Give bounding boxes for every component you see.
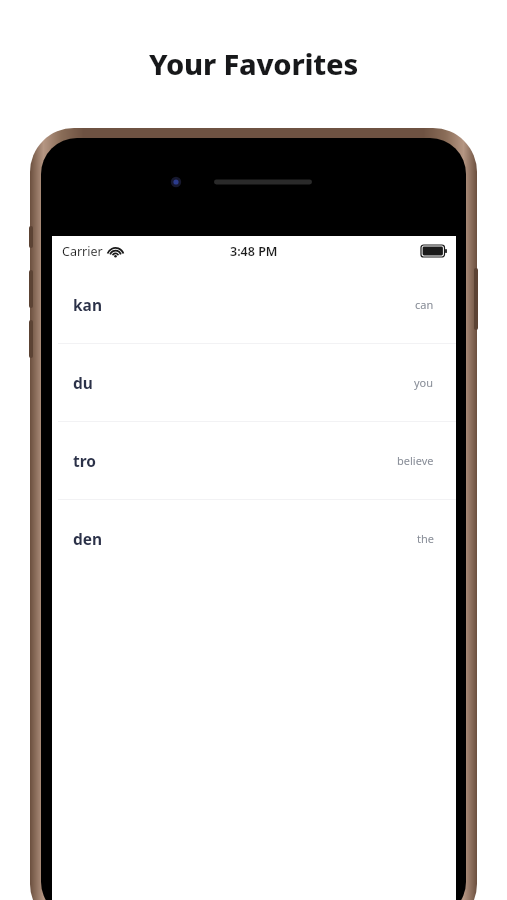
button[interactable]: kan <box>52 266 456 343</box>
staticText: du <box>73 372 93 393</box>
staticText: believe <box>397 453 434 468</box>
button[interactable]: den <box>52 500 456 577</box>
staticText: 3:48 PM <box>230 243 278 260</box>
staticText: kan <box>73 294 102 315</box>
button[interactable]: tro <box>52 422 456 499</box>
staticText: tro <box>73 450 97 471</box>
staticText: Carrier <box>62 243 103 260</box>
staticText: Your Favorites <box>0 44 507 83</box>
staticText: can <box>415 297 434 312</box>
button[interactable]: du <box>52 344 456 421</box>
staticText: den <box>73 528 103 549</box>
staticText: you <box>414 375 434 390</box>
staticText: the <box>417 531 434 546</box>
